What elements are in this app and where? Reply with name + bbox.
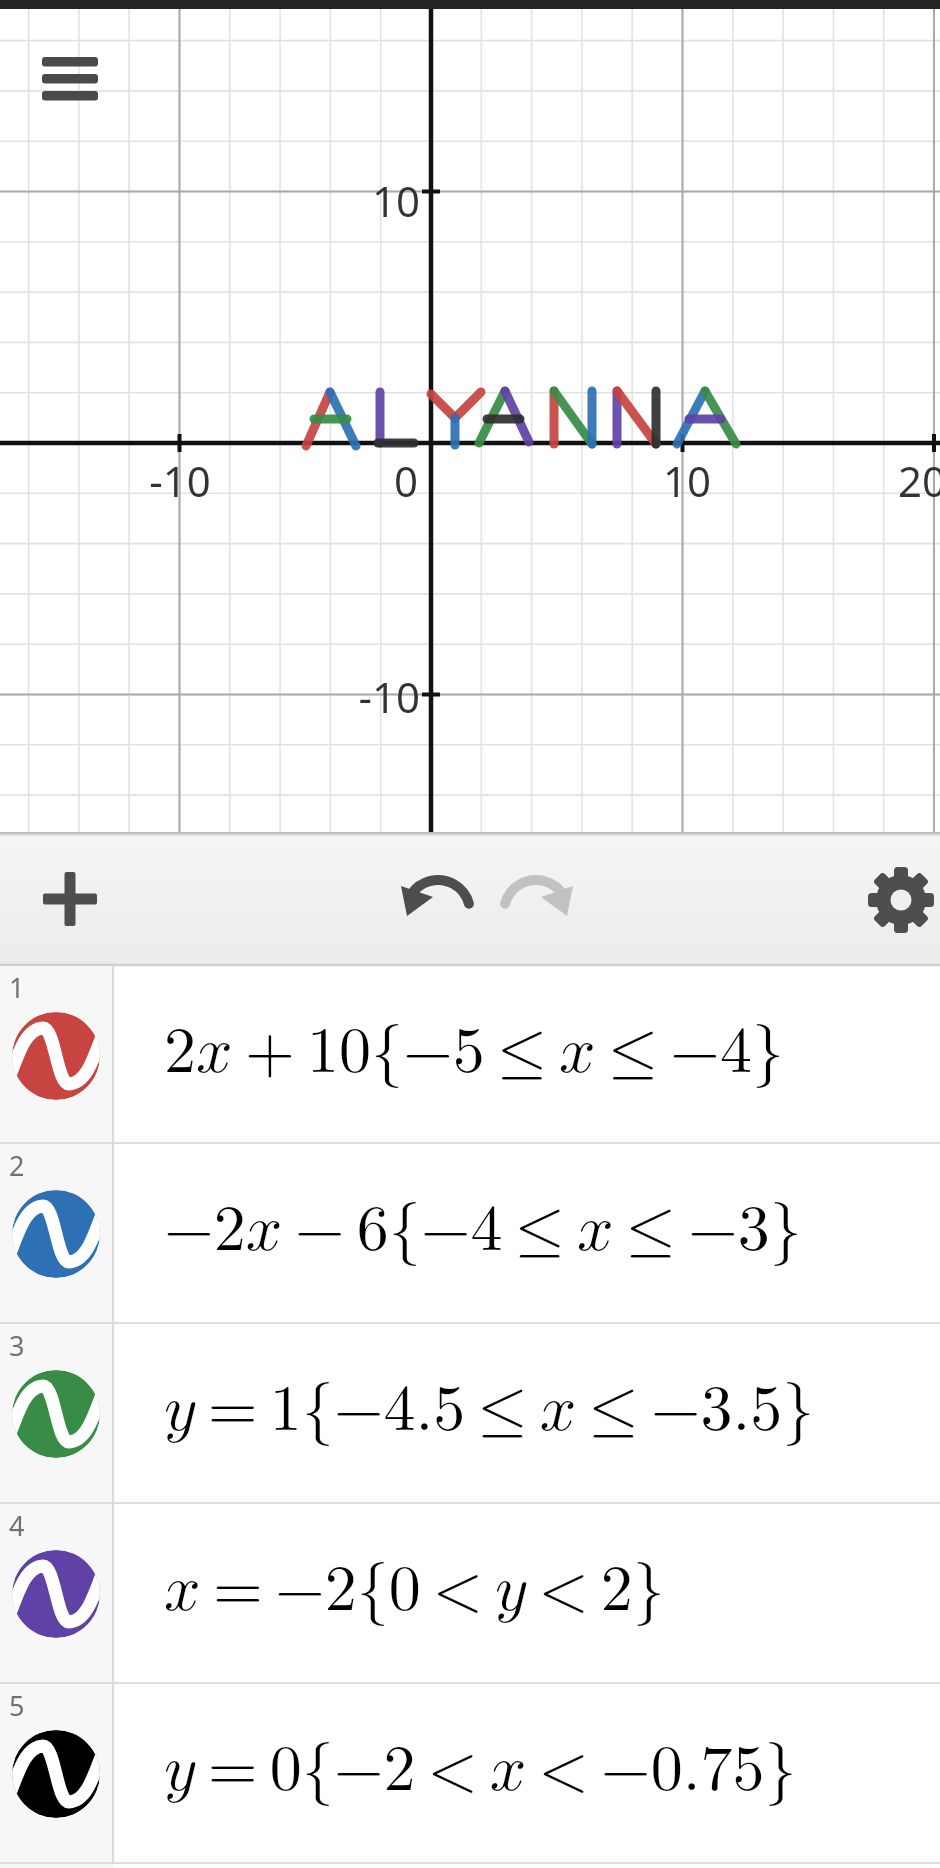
button[interactable]: [392, 860, 476, 940]
staticText: -10: [340, 668, 420, 718]
staticText: 10: [647, 452, 727, 502]
staticText: 1: [9, 969, 25, 1006]
staticText: 5: [9, 1687, 25, 1724]
staticText: 3: [9, 1327, 25, 1364]
staticText: −2𝑥 − 6{−4 ≤ 𝑥 ≤ −3}: [164, 1198, 802, 1262]
button[interactable]: 5: [0, 1684, 940, 1864]
button[interactable]: 1: [0, 966, 940, 1144]
button[interactable]: [498, 860, 582, 940]
button[interactable]: [28, 857, 112, 941]
staticText: 2𝑥 + 10{−5 ≤ 𝑥 ≤ −4}: [164, 1020, 784, 1084]
staticText: 𝑥 = −2{0 < 𝑦 < 2}: [164, 1558, 665, 1622]
button[interactable]: [862, 861, 940, 939]
button[interactable]: 3: [0, 1324, 940, 1504]
button[interactable]: 4: [0, 1504, 940, 1684]
staticText: 20: [898, 452, 940, 502]
button[interactable]: 2: [0, 1144, 940, 1324]
staticText: 4: [9, 1507, 25, 1544]
staticText: 10: [350, 172, 420, 222]
button[interactable]: [34, 48, 106, 112]
staticText: -10: [140, 452, 220, 502]
staticText: 0: [366, 452, 446, 502]
staticText: 2: [9, 1147, 25, 1184]
staticText: 𝑦 = 1{−4.5 ≤ 𝑥 ≤ −3.5}: [164, 1378, 815, 1442]
staticText: 𝑦 = 0{−2 < 𝑥 < −0.75}: [164, 1738, 797, 1802]
